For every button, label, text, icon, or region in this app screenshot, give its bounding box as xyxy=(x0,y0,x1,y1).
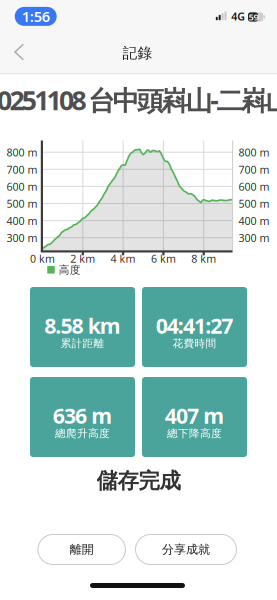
button[interactable]: 離開 xyxy=(38,534,125,564)
staticText: 記錄 xyxy=(122,44,152,62)
staticText: 8.58 km xyxy=(44,311,121,340)
staticText: 700 m xyxy=(238,162,269,177)
staticText: 高度 xyxy=(59,263,81,276)
staticText: 總爬升高度 xyxy=(55,427,110,440)
staticText: 8 km xyxy=(191,251,216,266)
staticText: 花費時間 xyxy=(172,337,216,350)
staticText: 300 m xyxy=(238,231,269,245)
staticText: 500 m xyxy=(6,197,37,211)
staticText: 2 km xyxy=(70,251,95,266)
staticText: 400 m xyxy=(238,214,269,228)
staticText: 儲存完成 xyxy=(96,468,180,494)
staticText: 04:41:27 xyxy=(156,311,233,340)
staticText: 分享成就 xyxy=(162,542,210,557)
staticText: 4 km xyxy=(111,251,136,266)
staticText: 總下降高度 xyxy=(167,427,222,440)
staticText: 1:56 xyxy=(22,7,50,26)
button[interactable] xyxy=(7,38,31,66)
staticText: 59 xyxy=(248,11,258,23)
staticText: 700 m xyxy=(6,162,37,177)
staticText: 800 m xyxy=(6,145,37,159)
staticText: 20251108 台中頭嵙山-二嵙山 xyxy=(0,82,277,118)
staticText: 300 m xyxy=(6,231,37,245)
staticText: 636 m xyxy=(53,401,112,430)
staticText: 0 km xyxy=(30,251,55,266)
staticText: 407 m xyxy=(165,401,224,430)
staticText: 600 m xyxy=(238,179,269,194)
staticText: 6 km xyxy=(151,251,176,266)
staticText: 累計距離 xyxy=(60,337,104,350)
staticText: 800 m xyxy=(238,145,269,159)
staticText: 400 m xyxy=(6,214,37,228)
staticText: 離開 xyxy=(70,542,94,557)
staticText: 600 m xyxy=(6,179,37,194)
staticText: 500 m xyxy=(238,197,269,211)
staticText: 4G xyxy=(231,9,245,23)
button[interactable]: 分享成就 xyxy=(135,534,236,564)
